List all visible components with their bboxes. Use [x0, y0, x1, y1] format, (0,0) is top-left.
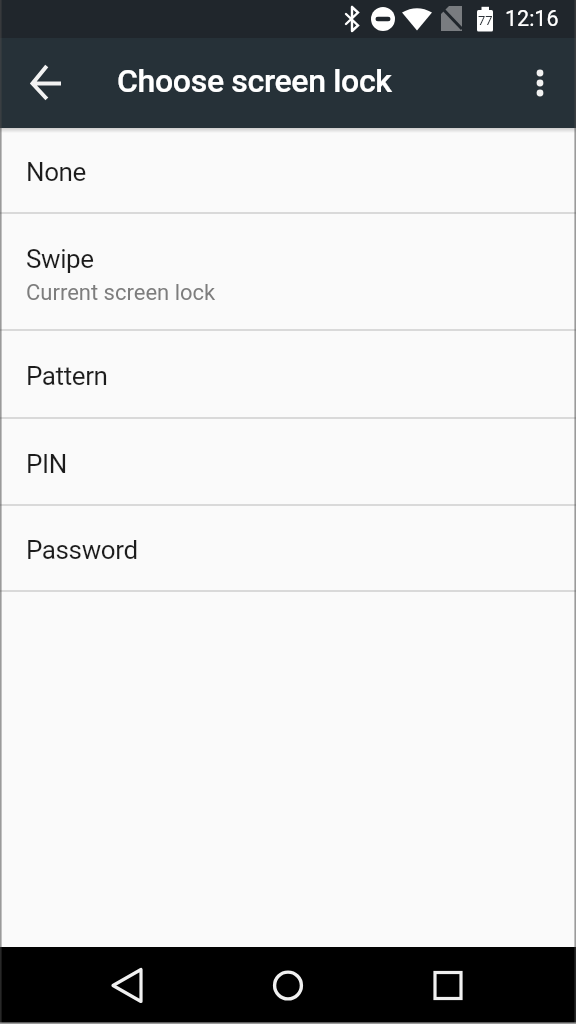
staticText: Choose screen lock: [117, 62, 392, 100]
staticText: Current screen lock: [26, 280, 216, 306]
staticText: Pattern: [26, 361, 108, 391]
button[interactable]: Swipe: [0, 214, 576, 329]
staticText: 77: [478, 13, 493, 28]
staticText: None: [26, 157, 86, 187]
button[interactable]: [103, 962, 151, 1010]
button[interactable]: Password: [0, 506, 576, 590]
button[interactable]: [424, 962, 472, 1010]
staticText: PIN: [26, 449, 67, 479]
staticText: Password: [26, 535, 138, 565]
button[interactable]: PIN: [0, 419, 576, 504]
button[interactable]: [264, 962, 312, 1010]
button[interactable]: Pattern: [0, 331, 576, 417]
staticText: Swipe: [26, 244, 94, 274]
staticText: 12:16: [505, 6, 559, 31]
button[interactable]: [516, 59, 564, 107]
button[interactable]: None: [0, 128, 576, 212]
button[interactable]: [21, 59, 69, 107]
